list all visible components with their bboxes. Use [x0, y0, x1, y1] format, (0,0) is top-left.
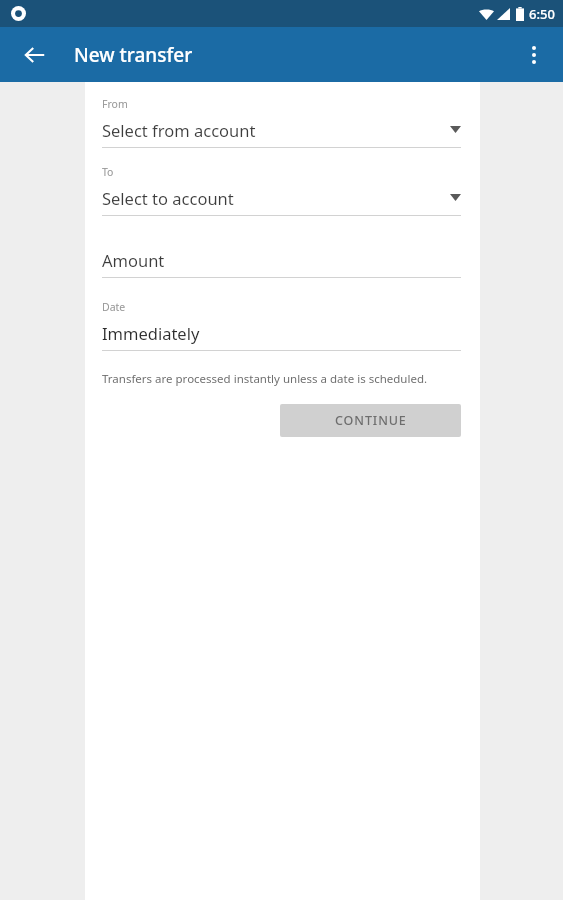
staticText: From — [102, 97, 128, 111]
staticText: Date — [102, 300, 126, 314]
staticText: To — [102, 165, 114, 179]
button[interactable]: Select to account — [102, 187, 461, 216]
button[interactable]: CONTINUE — [280, 404, 461, 437]
button[interactable]: More options — [511, 32, 557, 78]
staticText: 6:50 — [529, 5, 555, 23]
staticText: Amount — [102, 249, 165, 271]
button[interactable]: Immediately — [102, 322, 461, 351]
staticText: Select from account — [102, 119, 450, 141]
staticText: Immediately — [102, 322, 200, 344]
staticText: Transfers are processed instantly unless… — [102, 371, 428, 387]
staticText: Select to account — [102, 187, 450, 209]
button[interactable]: Select from account — [102, 119, 461, 148]
staticText: New transfer — [74, 42, 193, 68]
button[interactable]: Back — [12, 32, 58, 78]
staticText: CONTINUE — [335, 412, 407, 429]
button[interactable]: Amount — [102, 249, 461, 278]
